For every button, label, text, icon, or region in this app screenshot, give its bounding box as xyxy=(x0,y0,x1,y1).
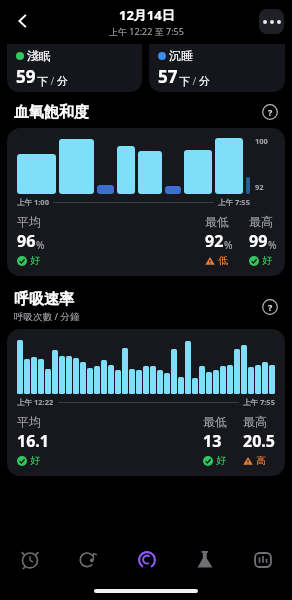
staticText: 20.5 xyxy=(243,430,275,452)
staticText: 99 xyxy=(249,230,268,252)
staticText: 平均 xyxy=(17,414,41,429)
button[interactable]: 上午 12:22 xyxy=(7,329,285,476)
button[interactable]: Insights xyxy=(176,538,234,582)
staticText: 平均 xyxy=(17,214,41,229)
button[interactable]: Back xyxy=(6,4,40,38)
button[interactable]: 沉睡 xyxy=(149,44,285,92)
staticText: 好 xyxy=(30,454,40,467)
staticText: 上午 12:22 xyxy=(17,397,54,407)
staticText: 好 xyxy=(30,254,40,267)
staticText: 呼吸速率 xyxy=(14,290,74,309)
staticText: 最低 xyxy=(203,414,227,429)
staticText: 下 xyxy=(179,74,190,88)
staticText: 低 xyxy=(218,254,228,267)
button[interactable]: More options xyxy=(259,9,284,34)
staticText: ? xyxy=(268,106,273,118)
staticText: / xyxy=(190,74,199,88)
staticText: 上午 1:00 xyxy=(17,197,49,207)
staticText: 100 xyxy=(255,136,268,146)
staticText: 13 xyxy=(203,430,222,452)
staticText: 96 xyxy=(17,230,36,252)
staticText: 最高 xyxy=(249,214,273,229)
staticText: 下 xyxy=(37,74,48,88)
staticText: 59 xyxy=(16,65,36,88)
staticText: 上午 12:22 至 7:55 xyxy=(109,25,184,37)
staticText: 呼吸次數 / 分鐘 xyxy=(14,310,80,323)
staticText: / xyxy=(48,74,57,88)
button[interactable]: Statistics xyxy=(234,538,292,582)
staticText: 上午 7:55 xyxy=(243,397,275,407)
button[interactable]: 100 xyxy=(7,128,285,276)
staticText: 沉睡 xyxy=(169,48,193,63)
staticText: 好 xyxy=(262,254,272,267)
staticText: 血氧飽和度 xyxy=(14,103,89,122)
staticText: 分 xyxy=(57,74,68,88)
button[interactable]: 淺眠 xyxy=(7,44,142,92)
button[interactable]: Help xyxy=(260,297,280,317)
staticText: % xyxy=(36,238,45,252)
staticText: 高 xyxy=(256,454,266,467)
staticText: % xyxy=(268,238,277,252)
staticText: 92 xyxy=(255,182,264,192)
staticText: 上午 7:55 xyxy=(218,197,250,207)
staticText: 92 xyxy=(205,230,224,252)
staticText: 57 xyxy=(158,65,178,88)
button[interactable]: Sleep sounds xyxy=(59,538,118,582)
button[interactable]: Help xyxy=(260,102,280,122)
staticText: 16.1 xyxy=(17,430,49,452)
staticText: 好 xyxy=(216,454,226,467)
staticText: 最低 xyxy=(205,214,229,229)
staticText: 分 xyxy=(199,74,210,88)
staticText: 淺眠 xyxy=(27,48,51,63)
button[interactable]: Sleep xyxy=(118,538,176,582)
staticText: 12月14日 xyxy=(119,6,175,24)
staticText: 最高 xyxy=(243,414,267,429)
staticText: ? xyxy=(268,301,273,313)
staticText: % xyxy=(224,238,233,252)
button[interactable]: Alarm xyxy=(0,538,59,582)
